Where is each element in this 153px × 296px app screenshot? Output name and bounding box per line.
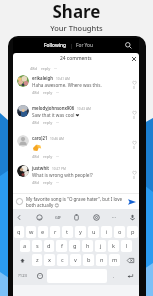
staticText: caro)21 — [32, 135, 48, 141]
staticText: reply — [43, 154, 53, 159]
staticText: c — [61, 256, 64, 264]
staticText: 10:43 AM — [77, 107, 91, 111]
staticText: k — [112, 242, 115, 250]
button[interactable]: Back — [14, 212, 25, 223]
button[interactable]: m — [109, 254, 120, 266]
button[interactable]: Like — [130, 78, 138, 86]
button[interactable]: w — [26, 226, 36, 238]
button[interactable]: d — [44, 240, 54, 252]
staticText: j — [100, 242, 102, 250]
button[interactable]: Search — [122, 39, 135, 52]
button[interactable]: melodyjohnsonx906 — [13, 103, 139, 133]
staticText: reply — [41, 66, 51, 71]
staticText: Haha awesome. Where was this. — [32, 82, 102, 88]
button[interactable]: l — [121, 240, 132, 252]
button[interactable]: erikaleigh — [13, 73, 139, 103]
staticText: 0 — [133, 176, 135, 180]
staticText: 48d — [30, 66, 38, 71]
button[interactable]: . — [108, 267, 120, 285]
staticText: t — [66, 228, 69, 236]
staticText: ··· — [112, 214, 117, 221]
staticText: GIF — [55, 215, 62, 220]
staticText: Your Thoughts — [0, 23, 153, 33]
button[interactable]: s — [32, 240, 42, 252]
button[interactable]: f — [56, 240, 67, 252]
button[interactable]: Shift — [13, 253, 31, 267]
button[interactable]: Emoji — [14, 196, 25, 207]
staticText: v — [74, 256, 77, 264]
button[interactable]: Clipboard — [71, 212, 82, 223]
button[interactable]: v — [70, 254, 81, 266]
staticText: i — [106, 228, 108, 236]
staticText: o — [118, 228, 122, 236]
button[interactable]: Like — [130, 138, 138, 146]
button[interactable]: q — [14, 226, 24, 238]
staticText: p — [131, 228, 135, 236]
button[interactable]: Voice — [127, 212, 138, 223]
staticText: 48d — [32, 90, 40, 95]
staticText: reply — [43, 90, 53, 95]
staticText: z — [36, 256, 39, 264]
staticText: My favorite song is "O grave hater", but… — [26, 196, 123, 202]
button[interactable]: b — [83, 254, 94, 266]
button[interactable]: e — [38, 226, 48, 238]
button[interactable]: ?123 — [13, 267, 33, 285]
button[interactable]: GIF — [54, 214, 63, 221]
staticText: 0 — [133, 86, 135, 90]
staticText: q — [17, 228, 21, 236]
staticText: 10:46 AM — [50, 137, 64, 141]
button[interactable]: Like — [130, 168, 138, 176]
button[interactable]: y — [75, 226, 86, 238]
staticText: ?123 — [18, 273, 28, 279]
staticText: reply — [43, 180, 53, 185]
button[interactable]: For You — [76, 42, 93, 49]
button[interactable]: r — [50, 226, 60, 238]
staticText: melodyjohnsonx906 — [32, 105, 75, 111]
button[interactable]: Stickers — [34, 212, 45, 223]
staticText: 24 comments — [60, 55, 92, 62]
button[interactable]: a — [20, 240, 30, 252]
staticText: x — [48, 256, 51, 264]
staticText: 48d — [32, 120, 40, 125]
button[interactable]: p — [127, 226, 138, 238]
button[interactable]: o — [114, 226, 125, 238]
staticText: For You — [76, 42, 93, 49]
staticText: a — [23, 242, 27, 250]
button[interactable]: c — [57, 254, 68, 266]
button[interactable]: n — [96, 254, 107, 266]
staticText: y — [79, 228, 82, 236]
staticText: 10:41 AM — [56, 77, 70, 81]
button[interactable]: Like — [130, 108, 138, 116]
staticText: 10:27 PM — [52, 167, 66, 171]
button[interactable]: i — [101, 226, 112, 238]
button[interactable]: k — [108, 240, 119, 252]
button[interactable]: g — [69, 240, 80, 252]
staticText: ··· — [54, 66, 58, 71]
button[interactable]: t — [62, 226, 73, 238]
staticText: b — [87, 256, 91, 264]
button[interactable]: u — [88, 226, 99, 238]
button[interactable]: Following — [44, 42, 67, 49]
button[interactable]: caro)21 — [13, 133, 139, 163]
button[interactable]: Close — [128, 53, 139, 64]
staticText: r — [54, 228, 57, 236]
button[interactable]: h — [82, 240, 93, 252]
staticText: justwhit — [32, 165, 50, 171]
staticText: w — [29, 228, 34, 236]
staticText: ··· — [56, 120, 60, 125]
button[interactable]: justwhit — [13, 163, 139, 193]
button[interactable]: Backspace — [121, 253, 139, 267]
button[interactable]: Enter — [120, 267, 139, 285]
button[interactable]: Settings — [91, 212, 102, 223]
staticText: ··· — [56, 180, 60, 185]
button[interactable]: Emoji — [33, 267, 46, 285]
button[interactable]: x — [44, 254, 55, 266]
button[interactable]: Send — [125, 195, 139, 209]
button[interactable]: z — [32, 254, 42, 266]
staticText: 48d — [32, 154, 40, 159]
staticText: g — [73, 242, 77, 250]
staticText: 0 — [133, 116, 135, 120]
button[interactable]: j — [95, 240, 106, 252]
button[interactable]: More — [111, 213, 118, 222]
